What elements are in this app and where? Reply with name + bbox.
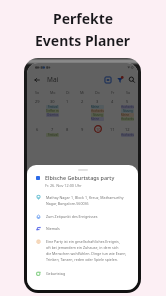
staticText: Meine Tag [91,105,104,109]
staticText: Festival [48,133,58,137]
staticText: Ostertos [47,113,59,117]
button[interactable]: Filter [116,76,124,84]
button[interactable]: Mathay Nagar 1, Block 1, Kreuz, Mathamur… [36,195,130,206]
staticText: Events Planer [35,31,131,50]
staticText: 8 [66,127,69,132]
staticText: 10 [96,127,101,132]
staticText: 30 [50,99,55,104]
staticText: Fr. 26. Nov 12:00 Uhr [45,183,82,188]
staticText: Hochzeits [121,133,134,137]
staticText: Meine Tag [121,113,134,117]
staticText: Hochzeits [121,105,134,109]
button[interactable]: Geburtstag [36,271,130,276]
staticText: Sitzung [123,109,133,113]
staticText: 4 [111,99,114,104]
staticText: Do [95,90,100,95]
staticText: 29 [35,99,40,104]
staticText: 3 [96,99,99,104]
staticText: 12 [125,127,130,132]
staticText: Sitzung [93,113,103,117]
staticText: Niemals [46,226,60,231]
staticText: Sa [126,90,130,95]
staticText: 9 [81,127,84,132]
staticText: Perfekte [53,9,114,28]
button[interactable]: Zum Zeitpunkt des Ereignisses [36,214,130,219]
button[interactable]: View mode [104,76,112,84]
staticText: So [35,90,40,95]
staticText: Mi [80,90,85,95]
staticText: Di [66,90,70,95]
button[interactable]: Eine Party ist ein gesellschaftliches Er… [36,239,130,262]
button[interactable]: Back [33,76,41,84]
staticText: Hochzeits [121,117,134,121]
staticText: Mai [47,75,59,84]
staticText: Treffen m [46,109,59,113]
staticText: 2 [81,99,84,104]
staticText: 7 [51,127,54,132]
staticText: Mo [50,90,56,95]
staticText: Eine Party ist ein gesellschaftliches Er… [46,239,127,262]
staticText: 6 [36,127,39,132]
staticText: 1 [66,99,69,104]
staticText: Hochzeits [91,109,104,113]
staticText: 11 [110,127,115,132]
staticText: Fr [111,90,115,95]
staticText: Mathay Nagar 1, Block 1, Kreuz, Mathamur… [46,195,124,206]
button[interactable]: Niemals [36,226,130,231]
staticText: Elbische Geburtstags party [45,174,115,181]
staticText: Meine Tag [91,117,104,121]
staticText: Geburtstag [46,271,66,276]
button[interactable]: Search [128,76,136,84]
staticText: Zum Zeitpunkt des Ereignisses [46,214,98,219]
staticText: 5 [126,99,129,104]
staticText: Festival [48,105,58,109]
